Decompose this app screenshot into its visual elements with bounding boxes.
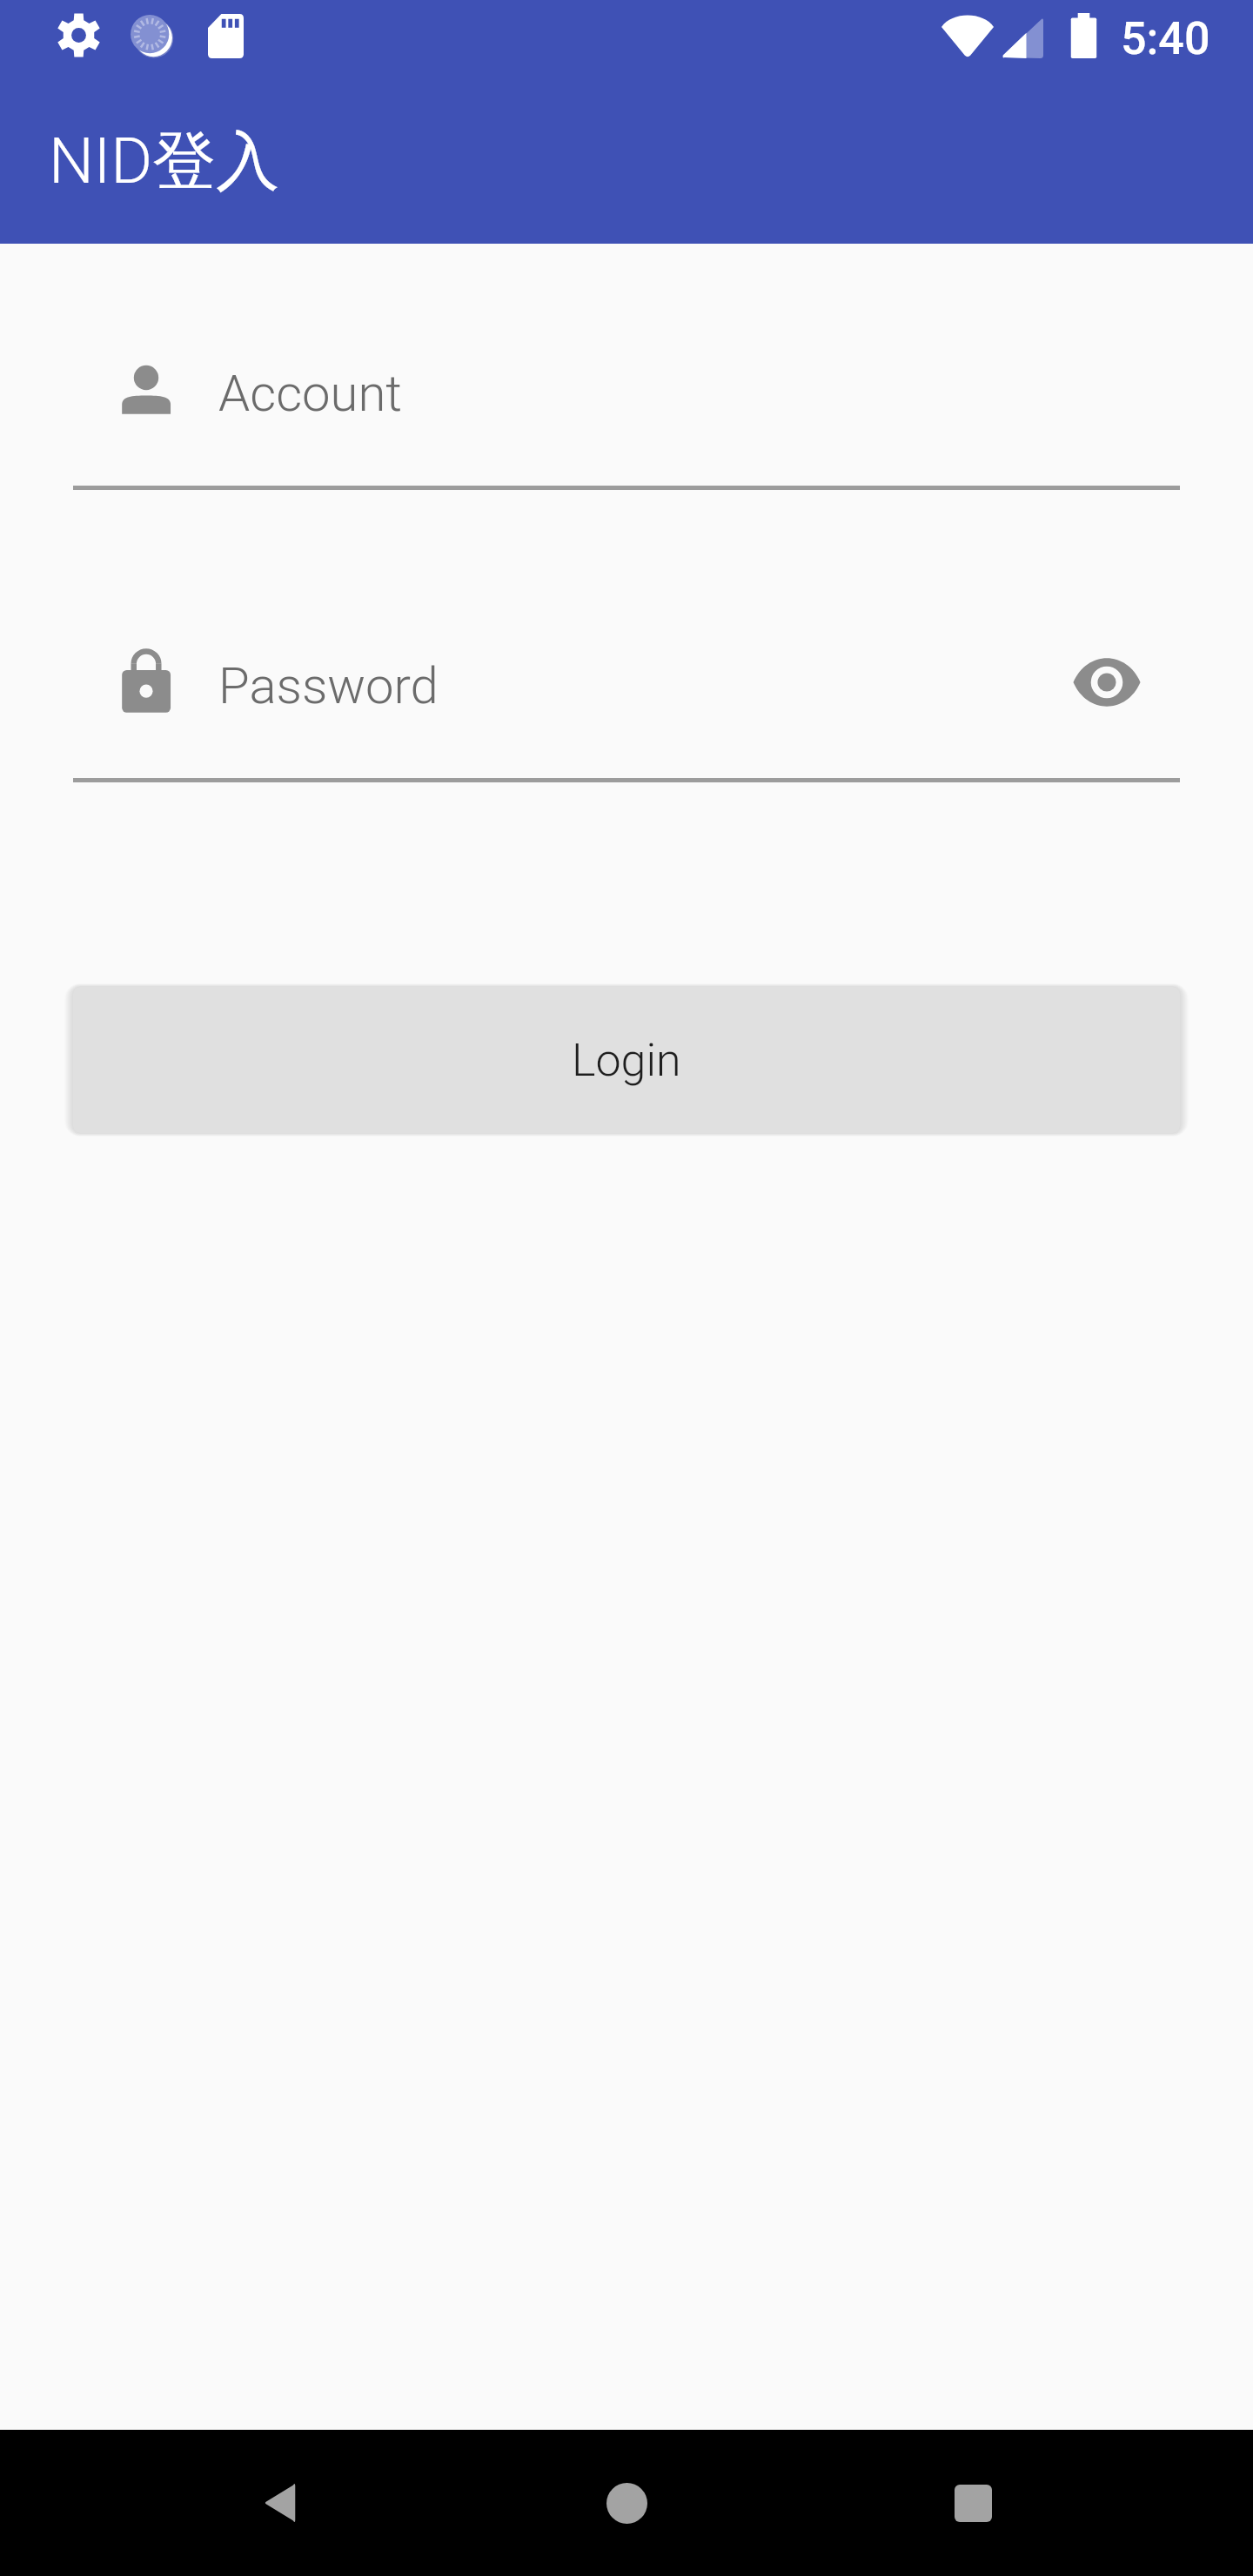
- staticText: Password: [218, 656, 439, 715]
- staticText: NID登入: [49, 122, 280, 202]
- button[interactable]: Login: [73, 987, 1180, 1133]
- staticText: Account: [218, 364, 402, 423]
- staticText: 5:40: [1121, 12, 1210, 65]
- button[interactable]: Account: [73, 336, 1180, 493]
- button[interactable]: Recent apps: [868, 2430, 1077, 2576]
- staticText: Login: [572, 1034, 681, 1087]
- button[interactable]: Password: [73, 628, 1180, 785]
- button[interactable]: Show password: [1063, 639, 1150, 726]
- button[interactable]: Home: [522, 2430, 731, 2576]
- button[interactable]: Back: [175, 2430, 384, 2576]
